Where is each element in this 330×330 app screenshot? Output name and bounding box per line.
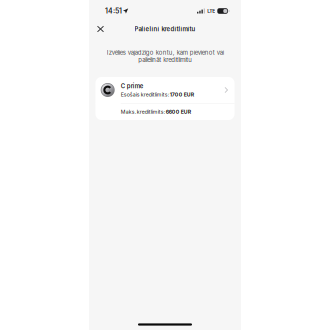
staticText: Palielini kreditlimitu [134, 25, 195, 33]
staticText: Esošais kreditlimits: 1700 EUR [121, 91, 194, 98]
staticText: C prime [121, 82, 144, 90]
staticText: LTE [207, 8, 215, 14]
staticText: Izvēlies vajadzīgo kontu, kam pievienot … [106, 49, 223, 63]
button[interactable]: Close [92, 21, 108, 37]
staticText: 14:51 [105, 7, 122, 15]
button[interactable]: C prime [95, 77, 234, 120]
staticText: Maks. kreditlimits: 6600 EUR [121, 109, 191, 115]
